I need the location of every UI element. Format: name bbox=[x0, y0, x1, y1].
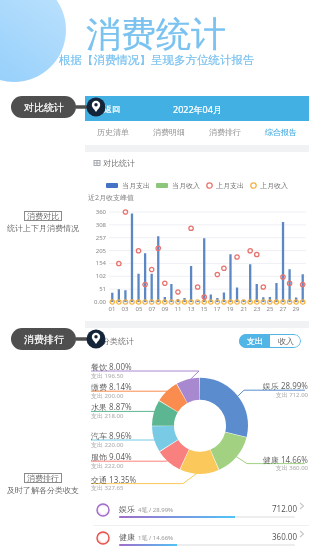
staticText: 支出 222.00 bbox=[91, 462, 124, 470]
button[interactable]: 综合报告 bbox=[253, 121, 309, 142]
staticText: 综合报告 bbox=[265, 127, 297, 137]
button[interactable]: 历史清单 bbox=[85, 121, 141, 142]
staticText: 05 bbox=[133, 305, 145, 313]
staticText: 娱乐 28.99% bbox=[85, 380, 308, 391]
staticText: 4笔 / 28.99% bbox=[138, 506, 174, 514]
staticText: 15 bbox=[198, 305, 210, 313]
staticText: 21 bbox=[238, 305, 250, 313]
staticText: 308 bbox=[85, 221, 106, 229]
staticText: 支出 200.00 bbox=[91, 392, 124, 400]
staticText: 对比统计 bbox=[24, 101, 64, 114]
staticText: 154 bbox=[85, 259, 106, 267]
staticText: 09 bbox=[159, 305, 171, 313]
staticText: 51 bbox=[85, 285, 106, 293]
staticText: 历史清单 bbox=[97, 127, 129, 137]
staticText: 102 bbox=[85, 272, 106, 280]
staticText: 支出 327.65 bbox=[91, 484, 124, 492]
staticText: 交通 13.35% bbox=[91, 474, 137, 485]
button[interactable]: 消费排行 bbox=[11, 328, 76, 350]
staticText: 23 bbox=[251, 305, 263, 313]
button[interactable]: 支出 bbox=[239, 334, 270, 348]
staticText: 消费排行 bbox=[209, 127, 241, 137]
button[interactable]: 对比统计 bbox=[11, 96, 76, 118]
staticText: 支出 220.00 bbox=[91, 441, 124, 449]
staticText: 上月收入 bbox=[260, 181, 288, 190]
staticText: 13 bbox=[185, 305, 197, 313]
staticText: 分类统计 bbox=[102, 336, 134, 346]
staticText: 03 bbox=[119, 305, 131, 313]
staticText: 支出 360.00 bbox=[85, 464, 308, 472]
staticText: 1笔 / 14.66% bbox=[138, 534, 174, 542]
staticText: 及时了解各分类收支 bbox=[7, 485, 79, 495]
staticText: 水果 8.87% bbox=[91, 401, 132, 412]
staticText: 支出 218.00 bbox=[91, 412, 124, 420]
staticText: 消费排行 bbox=[27, 473, 59, 483]
staticText: 360 bbox=[85, 208, 106, 216]
staticText: 根据【消费情况】呈现多方位统计报告 bbox=[59, 53, 255, 67]
staticText: 近2月收支峰值 bbox=[88, 193, 135, 203]
staticText: 2022年04月 bbox=[173, 103, 222, 115]
staticText: 上月支出 bbox=[216, 181, 244, 190]
staticText: 服饰 9.04% bbox=[91, 451, 132, 462]
staticText: 当月支出 bbox=[122, 181, 150, 190]
button[interactable]: 消费排行 bbox=[197, 121, 253, 142]
staticText: 餐饮 8.00% bbox=[91, 361, 132, 372]
staticText: 17 bbox=[211, 305, 223, 313]
staticText: 娱乐 bbox=[119, 504, 135, 514]
staticText: 支出 196.50 bbox=[91, 372, 124, 380]
staticText: 收入 bbox=[278, 336, 294, 346]
button[interactable]: 健康 bbox=[85, 522, 309, 550]
staticText: 健康 14.66% bbox=[85, 454, 308, 465]
staticText: 0.00 bbox=[85, 298, 106, 306]
staticText: 统计上下月消费情况 bbox=[7, 223, 79, 233]
button[interactable]: 娱乐 bbox=[85, 494, 309, 522]
staticText: 支出 bbox=[247, 336, 263, 346]
button[interactable]: 2022年04月 bbox=[85, 96, 309, 121]
staticText: 25 bbox=[264, 305, 276, 313]
staticText: 11 bbox=[172, 305, 184, 313]
staticText: 01 bbox=[106, 305, 118, 313]
staticText: 19 bbox=[224, 305, 236, 313]
staticText: 27 bbox=[277, 305, 289, 313]
staticText: 29 bbox=[290, 305, 302, 313]
staticText: 缴费 8.14% bbox=[91, 381, 132, 392]
staticText: 支出 712.00 bbox=[85, 391, 308, 399]
staticText: 712.00 bbox=[272, 503, 298, 514]
staticText: 消费排行 bbox=[24, 333, 64, 346]
button[interactable]: 消费明细 bbox=[141, 121, 197, 142]
staticText: 返回 bbox=[104, 104, 120, 114]
staticText: 07 bbox=[146, 305, 158, 313]
staticText: 消费明细 bbox=[153, 127, 185, 137]
staticText: 健康 bbox=[119, 532, 135, 542]
staticText: 消费对比 bbox=[27, 211, 59, 221]
button[interactable]: 收入 bbox=[270, 334, 301, 348]
staticText: 当月收入 bbox=[172, 181, 200, 190]
staticText: 对比统计 bbox=[103, 158, 135, 168]
staticText: 205 bbox=[85, 247, 106, 255]
staticText: 汽车 8.96% bbox=[91, 430, 132, 441]
staticText: 消费统计 bbox=[86, 12, 226, 56]
staticText: 257 bbox=[85, 234, 106, 242]
staticText: 360.00 bbox=[272, 531, 298, 542]
